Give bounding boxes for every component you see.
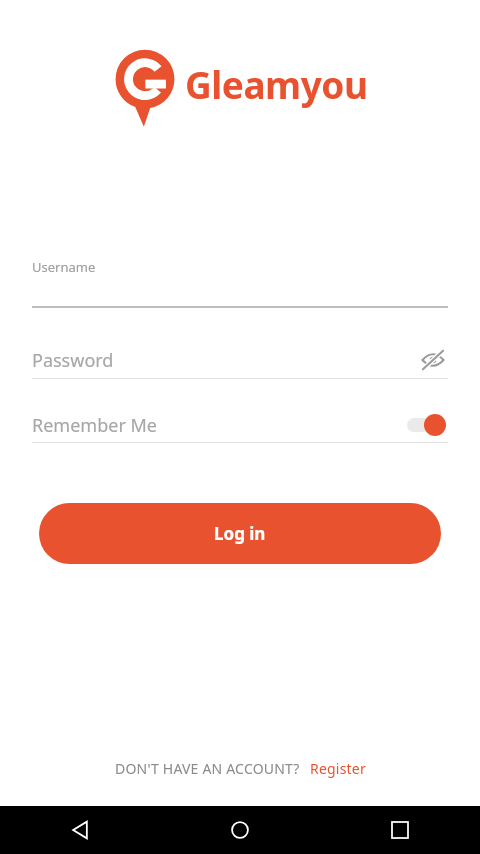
button[interactable]: Show password <box>418 345 448 375</box>
button[interactable]: Remember me toggle <box>404 412 448 438</box>
button[interactable]: Remember Me <box>32 412 448 438</box>
staticText: Remember Me <box>32 413 404 438</box>
button[interactable]: Register <box>310 759 366 778</box>
staticText: Register <box>310 759 366 778</box>
button[interactable]: Home <box>160 806 320 854</box>
staticText: Gleamyou <box>185 59 368 109</box>
button[interactable]: Password <box>32 345 448 375</box>
staticText: DON'T HAVE AN ACCOUNT? <box>115 759 300 778</box>
button[interactable]: Back <box>0 806 160 854</box>
staticText: Username <box>32 258 96 276</box>
button[interactable]: Recent apps <box>320 806 480 854</box>
button[interactable]: Log in <box>39 503 441 564</box>
staticText: Log in <box>214 522 266 545</box>
button[interactable]: Username <box>0 258 480 308</box>
staticText: Password <box>32 348 418 373</box>
